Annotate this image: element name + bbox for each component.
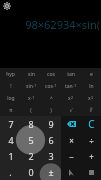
staticText: 5 [28,134,34,146]
staticText: tan [67,71,75,78]
staticText: e [90,71,93,78]
button[interactable]: 5 [21,132,41,148]
staticText: -1 [73,83,77,88]
staticText: ! [10,83,12,90]
staticText: 0 [28,166,34,178]
staticText: cos [45,83,53,90]
button[interactable]: 1 [0,148,21,164]
staticText: sin [28,71,35,78]
staticText: x [68,95,71,102]
button[interactable]: tan [61,68,81,80]
button[interactable]: 6 [41,132,61,148]
button[interactable]: 0 [21,164,41,180]
staticText: 7 [8,118,14,130]
button[interactable]: 8 [21,116,41,132]
staticText: + [89,151,94,162]
button[interactable]: 3 [41,148,61,164]
button[interactable]: x [21,92,41,104]
staticText: 2 [71,95,74,100]
button[interactable]: 2 [21,148,41,164]
staticText: cos [47,71,55,78]
button[interactable]: hyp [0,68,21,80]
button[interactable]: x [81,92,101,104]
button[interactable]: √ [61,104,81,116]
staticText: 1 [8,150,14,162]
button[interactable]: 4 [0,132,21,148]
button[interactable]: cos [41,68,61,80]
button[interactable]: ln [81,80,101,92]
button[interactable]: cos [41,80,61,92]
staticText: hyp [6,71,15,78]
button[interactable]: tan [61,80,81,92]
staticText: × [69,135,74,146]
staticText: 8 [28,118,34,130]
staticText: − [69,151,74,162]
staticText: √ [69,107,73,113]
staticText: ) [50,107,52,114]
staticText: 98×62934×sin( [25,17,100,32]
staticText: ^ [50,95,53,102]
button[interactable]: . [0,164,21,180]
button[interactable]: 9 [41,116,61,132]
staticText: 2 [28,150,34,162]
button[interactable]: ^ [41,92,61,104]
staticText: 9 [48,118,54,130]
staticText: sin [26,83,33,90]
staticText: . [9,166,12,178]
button[interactable]: + [81,148,101,164]
staticText: ∛ [89,107,93,113]
staticText: -1 [53,83,57,88]
staticText: ln [89,83,94,90]
button[interactable]: Backspace [61,116,81,132]
staticText: x [88,95,91,102]
button[interactable]: ( [21,104,41,116]
button[interactable]: ± [41,164,61,180]
button[interactable]: − [61,148,81,164]
button[interactable]: ! [0,80,21,92]
button[interactable]: π [0,104,21,116]
button[interactable]: Equals [81,164,101,180]
button[interactable]: sin [21,68,41,80]
staticText: 3 [91,95,94,100]
staticText: log [7,95,15,102]
staticText: π [9,107,13,114]
button[interactable]: ) [41,104,61,116]
button[interactable]: x [61,92,81,104]
button[interactable]: 7 [0,116,21,132]
button[interactable]: sin [21,80,41,92]
staticText: 3 [48,150,54,162]
button[interactable]: log [0,92,21,104]
button[interactable]: C [81,116,101,132]
staticText: C [88,117,95,131]
staticText: tan [65,83,73,90]
staticText: x [28,95,31,102]
button[interactable]: Cursor [61,164,81,180]
button[interactable]: e [81,68,101,80]
button[interactable]: × [61,132,81,148]
staticText: ± [48,166,54,178]
staticText: ÷ [89,135,94,146]
staticText: -1 [31,95,35,100]
staticText: -1 [33,83,37,88]
button[interactable]: ÷ [81,132,101,148]
staticText: ( [30,107,32,114]
staticText: 6 [48,134,54,146]
button[interactable]: ∛ [81,104,101,116]
staticText: 4 [8,134,14,146]
